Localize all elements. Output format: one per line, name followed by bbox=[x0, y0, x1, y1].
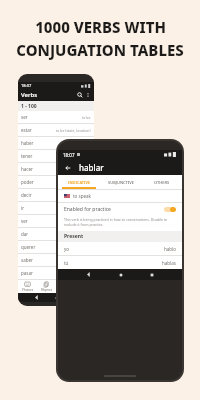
button[interactable]: Phrases bbox=[18, 280, 37, 293]
staticText: estar bbox=[21, 127, 32, 133]
staticText: 18:07 bbox=[21, 83, 32, 88]
staticText: to speak bbox=[73, 193, 91, 199]
button[interactable]: INDICATIVE bbox=[58, 175, 100, 189]
staticText: INDICATIVE bbox=[68, 180, 91, 185]
button[interactable]: poder bbox=[18, 176, 94, 189]
button[interactable]: haber bbox=[18, 137, 94, 150]
button[interactable]: Rhymes bbox=[37, 280, 56, 293]
button[interactable]: tener bbox=[18, 150, 94, 163]
button[interactable]: saber bbox=[18, 254, 94, 267]
staticText: ver bbox=[21, 218, 28, 224]
button[interactable]: SUBJUNCTIVE bbox=[100, 175, 141, 189]
staticText: haber bbox=[21, 140, 34, 146]
button[interactable]: hacer bbox=[18, 163, 94, 176]
staticText: SUBJUNCTIVE bbox=[108, 180, 134, 185]
staticText: pasar bbox=[21, 270, 33, 276]
staticText: decir bbox=[21, 192, 32, 198]
button[interactable]: OTHERS bbox=[141, 175, 182, 189]
staticText: yo bbox=[64, 246, 70, 252]
staticText: CONJUGATION TABLES bbox=[16, 40, 184, 60]
button[interactable]: estar bbox=[18, 124, 94, 137]
staticText: 18:07 bbox=[63, 152, 75, 158]
button[interactable]: ver bbox=[18, 215, 94, 228]
button[interactable]: pasar bbox=[18, 267, 94, 280]
staticText: hacer bbox=[21, 166, 33, 172]
staticText: poder bbox=[21, 179, 34, 185]
button[interactable]: More options bbox=[85, 92, 91, 98]
staticText: Verbs bbox=[21, 91, 38, 99]
staticText: querer bbox=[21, 244, 36, 250]
staticText: tú bbox=[64, 260, 69, 266]
staticText: 1000 VERBS WITH bbox=[35, 17, 166, 37]
button[interactable]: querer bbox=[18, 241, 94, 254]
staticText: ser bbox=[21, 114, 28, 120]
button[interactable]: ir bbox=[18, 202, 94, 215]
staticText: to be bbox=[82, 115, 91, 120]
button[interactable]: Back bbox=[63, 163, 72, 172]
staticText: Rhymes bbox=[41, 288, 53, 292]
button[interactable]: Search bbox=[77, 92, 83, 98]
staticText: Present bbox=[64, 233, 84, 240]
staticText: tener bbox=[21, 153, 33, 159]
staticText: This verb is being practiced in how-to c… bbox=[64, 217, 176, 227]
staticText: Phrases bbox=[22, 288, 34, 292]
button[interactable]: Verbs bbox=[56, 280, 75, 293]
staticText: ir bbox=[21, 205, 25, 211]
button[interactable]: ser bbox=[18, 111, 94, 124]
staticText: OTHERS bbox=[154, 180, 170, 185]
staticText: 1 - 100 bbox=[21, 103, 37, 110]
staticText: to be (state, location) bbox=[56, 128, 91, 133]
staticText: Enabled for practice bbox=[64, 206, 111, 213]
button[interactable]: tú bbox=[58, 256, 182, 269]
button[interactable]: Verbs bbox=[21, 89, 91, 101]
staticText: saber bbox=[21, 257, 33, 263]
button[interactable]: yo bbox=[58, 242, 182, 256]
button[interactable]: decir bbox=[18, 189, 94, 202]
button[interactable]: Enabled for practice bbox=[64, 203, 176, 216]
staticText: hablas bbox=[162, 260, 176, 266]
staticText: dar bbox=[21, 231, 29, 237]
staticText: hablo bbox=[164, 246, 176, 252]
button[interactable]: dar bbox=[18, 228, 94, 241]
staticText: hablar bbox=[79, 162, 104, 173]
